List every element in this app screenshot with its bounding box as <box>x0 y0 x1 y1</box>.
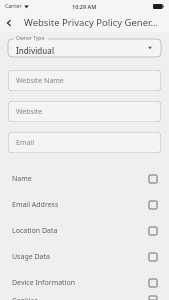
staticText: Website Name <box>16 76 64 86</box>
button[interactable]: Location Data <box>0 218 169 244</box>
button[interactable]: Email <box>8 132 161 153</box>
button[interactable]: Back <box>0 14 18 32</box>
staticText: Individual <box>16 45 55 56</box>
staticText: Website <box>16 107 43 117</box>
button[interactable]: Usage Data <box>0 244 169 270</box>
button[interactable]: Device Information <box>0 270 169 296</box>
staticText: Usage Data <box>12 252 50 262</box>
button[interactable]: Name <box>0 166 169 192</box>
staticText: Location Data <box>12 226 58 236</box>
staticText: Email Address <box>12 200 59 210</box>
staticText: Owner Type <box>16 35 45 42</box>
button[interactable]: Website <box>8 101 161 122</box>
button[interactable]: Cookies <box>0 296 169 300</box>
staticText: Cookies <box>12 296 38 300</box>
button[interactable]: Website Name <box>8 70 161 91</box>
staticText: Name <box>12 174 32 184</box>
button[interactable] <box>8 39 161 57</box>
staticText: 10:29 AM <box>72 3 97 10</box>
staticText: Email <box>16 138 34 148</box>
staticText: Carrier <box>5 3 22 10</box>
staticText: Website Privacy Policy Gener… <box>24 16 158 29</box>
staticText: Device Information <box>12 278 76 288</box>
button[interactable]: Email Address <box>0 192 169 218</box>
